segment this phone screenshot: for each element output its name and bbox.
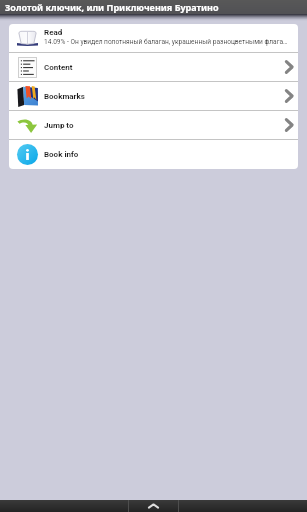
staticText: 14.09% - Он увидел полотняный балаган, у… (44, 38, 290, 46)
staticText: Bookmarks (44, 92, 283, 101)
button[interactable]: Jump to (9, 111, 298, 139)
staticText: Jump to (44, 121, 283, 130)
button[interactable]: Show navigation bar (129, 500, 178, 512)
staticText: Золотой ключик, или Приключения Буратино (5, 1, 219, 13)
button[interactable]: Read (9, 24, 298, 52)
staticText: Content (44, 63, 283, 72)
button[interactable]: Recent apps (179, 500, 307, 512)
button[interactable]: Back (0, 500, 128, 512)
staticText: Read (44, 28, 63, 37)
button[interactable]: Content (9, 53, 298, 81)
staticText: Book info (44, 150, 295, 159)
button[interactable]: Book info (9, 140, 298, 169)
button[interactable]: Bookmarks (9, 82, 298, 110)
